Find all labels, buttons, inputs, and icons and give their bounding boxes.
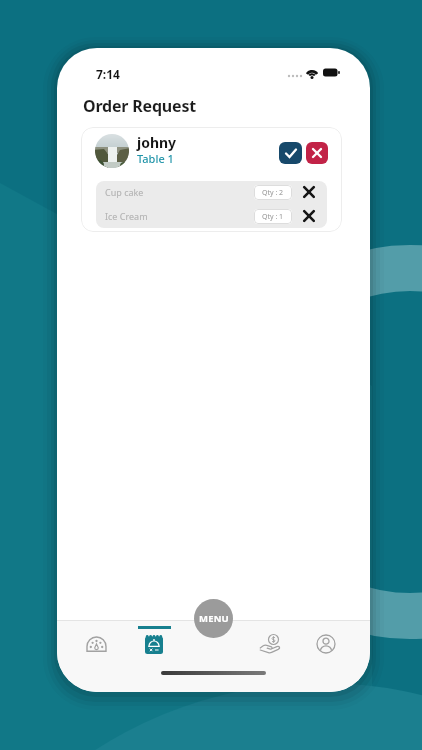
staticText: Cup cake xyxy=(105,186,144,198)
button[interactable] xyxy=(306,142,328,164)
staticText: Qty : 1 xyxy=(262,212,284,222)
staticText: 7:14 xyxy=(96,66,120,82)
staticText: Qty : 2 xyxy=(262,188,284,198)
staticText: MENU xyxy=(199,612,229,625)
button[interactable] xyxy=(302,209,316,223)
button[interactable] xyxy=(309,627,343,661)
button[interactable] xyxy=(253,627,287,661)
button[interactable] xyxy=(137,627,171,661)
staticText: Ice Cream xyxy=(105,210,148,222)
button[interactable] xyxy=(302,185,316,199)
staticText: Order Request xyxy=(83,95,196,117)
button[interactable]: MENU xyxy=(194,599,233,638)
button[interactable] xyxy=(79,627,113,661)
staticText: Table 1 xyxy=(137,151,174,166)
button[interactable] xyxy=(279,142,302,164)
staticText: johny xyxy=(137,133,177,152)
